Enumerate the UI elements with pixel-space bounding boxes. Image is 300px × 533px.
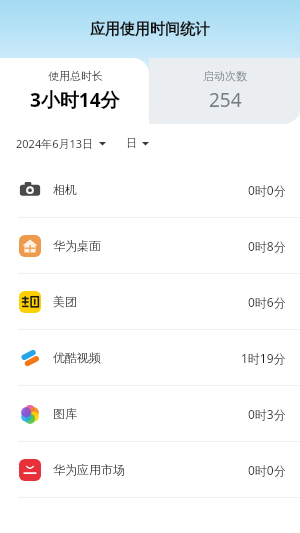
staticText: 图库 <box>53 406 77 421</box>
button[interactable]: 日 <box>124 132 151 154</box>
button[interactable]: 华为应用市场 <box>0 442 300 497</box>
button[interactable]: 2024年6月13日 <box>14 132 108 155</box>
staticText: 3小时14分 <box>30 87 120 113</box>
staticText: 0时3分 <box>248 406 286 422</box>
staticText: 日 <box>126 136 137 150</box>
button[interactable]: 优酷视频 <box>0 330 300 385</box>
staticText: 2024年6月13日 <box>16 136 94 151</box>
staticText: 0时8分 <box>248 238 286 254</box>
button[interactable]: 图库 <box>0 386 300 441</box>
staticText: 相机 <box>53 182 77 197</box>
staticText: 美团 <box>53 294 77 309</box>
staticText: 启动次数 <box>203 69 247 83</box>
button[interactable]: 相机 <box>0 162 300 217</box>
staticText: 0时6分 <box>248 294 286 310</box>
staticText: 0时0分 <box>248 462 286 478</box>
staticText: 优酷视频 <box>53 350 101 365</box>
staticText: 应用使用时间统计 <box>90 20 210 39</box>
button[interactable]: 华为桌面 <box>0 218 300 273</box>
button[interactable]: 使用总时长 <box>0 58 149 124</box>
staticText: 0时0分 <box>248 182 286 198</box>
button[interactable]: 美团 <box>0 274 300 329</box>
button[interactable]: 启动次数 <box>149 58 300 124</box>
staticText: 使用总时长 <box>48 69 103 83</box>
staticText: 1时19分 <box>241 350 286 366</box>
staticText: 华为应用市场 <box>53 462 125 477</box>
staticText: 华为桌面 <box>53 238 101 253</box>
staticText: 254 <box>209 87 242 113</box>
